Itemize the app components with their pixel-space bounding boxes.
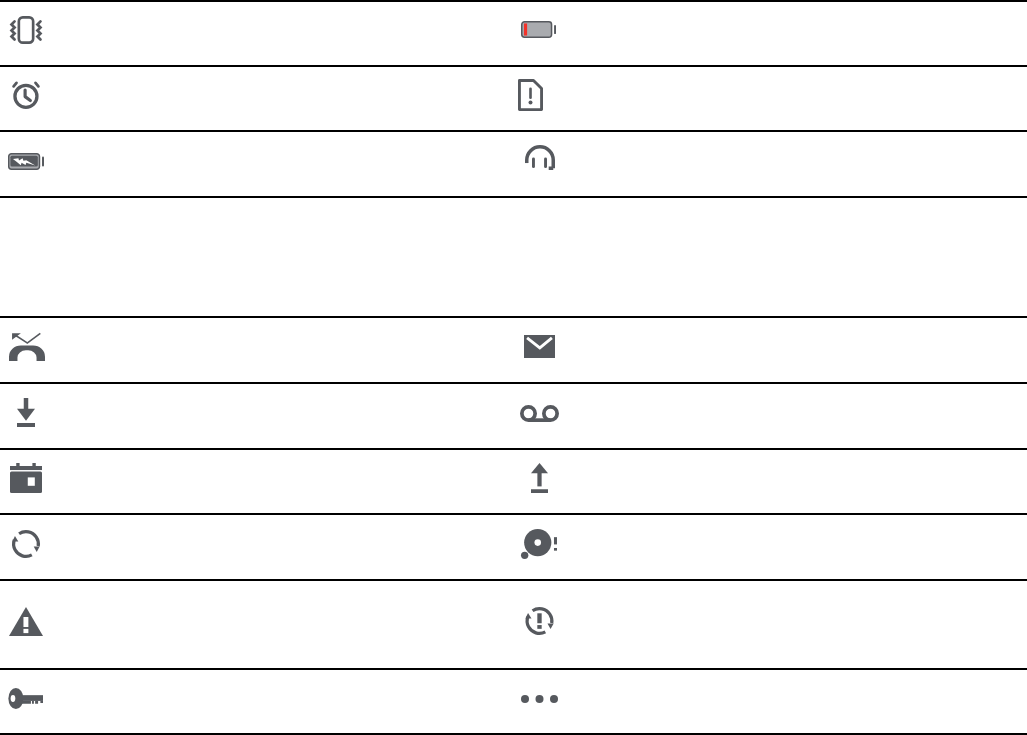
button[interactable]: Battery alert: [513, 2, 1027, 65]
button[interactable]: SIM card alert: [513, 66, 1027, 130]
button[interactable]: Voicemail: [513, 384, 1027, 448]
button[interactable]: Upload: [513, 449, 1027, 513]
button[interactable]: Sync: [0, 515, 513, 579]
button[interactable]: Headset: [513, 132, 1027, 196]
button[interactable]: Email: [513, 318, 1027, 382]
button[interactable]: VPN key: [0, 670, 513, 734]
button[interactable]: Event: [0, 449, 513, 513]
button[interactable]: Missed call: [0, 318, 513, 382]
button[interactable]: Vibration: [0, 2, 513, 65]
button[interactable]: More options: [513, 670, 1027, 734]
button[interactable]: Sync alert: [513, 581, 1027, 669]
button[interactable]: Download: [0, 384, 513, 448]
button[interactable]: Warning: [0, 581, 513, 669]
button[interactable]: Sync problem: [513, 515, 1027, 579]
button[interactable]: Alarm: [0, 66, 513, 130]
button[interactable]: Battery charging: [0, 132, 513, 196]
